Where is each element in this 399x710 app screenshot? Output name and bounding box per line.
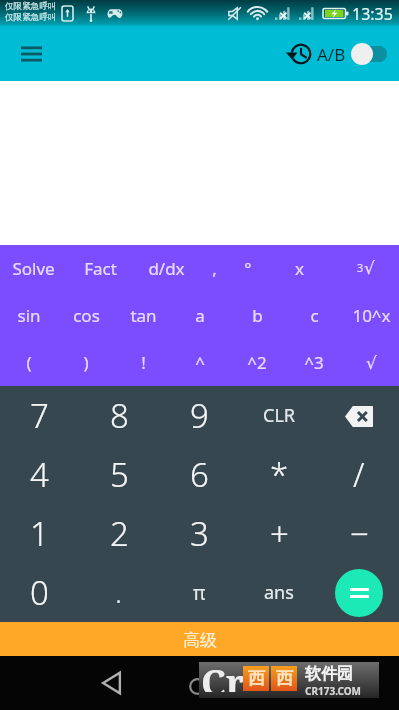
staticText: √ <box>364 258 375 278</box>
button[interactable]: 7 <box>0 386 79 445</box>
staticText: A/B <box>317 43 346 66</box>
button[interactable]: + <box>239 504 319 563</box>
button[interactable]: √ <box>344 339 398 386</box>
staticText: ^ <box>195 351 205 374</box>
button[interactable]: 10^x <box>344 292 398 339</box>
staticText: ) <box>83 351 89 374</box>
button[interactable]: 4 <box>0 445 79 504</box>
button[interactable]: a <box>173 292 227 339</box>
staticText: ° <box>244 257 252 280</box>
button[interactable]: CLR <box>239 386 319 445</box>
button[interactable]: 9 <box>159 386 239 445</box>
staticText: 9 <box>190 393 209 438</box>
button[interactable]: Equals <box>319 563 399 622</box>
button[interactable]: History <box>283 39 313 69</box>
staticText: / <box>353 452 365 497</box>
button[interactable]: ^2 <box>230 339 284 386</box>
staticText: tan <box>130 304 157 327</box>
button[interactable]: Backspace <box>319 386 399 445</box>
staticText: . <box>116 583 122 609</box>
button[interactable]: Solve <box>6 245 60 292</box>
button[interactable]: ° <box>221 245 275 292</box>
staticText: * <box>270 452 289 497</box>
staticText: ^2 <box>247 351 267 374</box>
staticText: ^3 <box>304 351 324 374</box>
button[interactable]: 高级 <box>0 622 399 656</box>
staticText: 6 <box>190 452 209 497</box>
staticText: , <box>212 257 217 280</box>
button[interactable]: Menu <box>10 33 52 75</box>
staticText: 3 <box>190 511 209 556</box>
button[interactable]: ans <box>239 563 319 622</box>
staticText: ! <box>141 351 146 374</box>
staticText: 8 <box>110 393 129 438</box>
button[interactable]: ^3 <box>287 339 341 386</box>
staticText: cos <box>73 304 100 327</box>
button[interactable]: b <box>230 292 284 339</box>
staticText: 西 <box>248 668 265 689</box>
staticText: CR173.COM <box>305 684 362 698</box>
button[interactable]: ) <box>59 339 113 386</box>
staticText: 1 <box>30 511 49 556</box>
button[interactable]: d/dx <box>139 245 193 292</box>
button[interactable]: ^ <box>173 339 227 386</box>
button[interactable]: 1 <box>0 504 79 563</box>
staticText: sin <box>17 304 41 327</box>
staticText: 3 <box>357 260 364 275</box>
staticText: 高级 <box>183 630 217 651</box>
staticText: b <box>252 304 263 327</box>
button[interactable]: c <box>287 292 341 339</box>
staticText: 仅限紧急呼叫 <box>5 12 57 23</box>
staticText: d/dx <box>148 257 185 280</box>
staticText: x <box>295 257 304 280</box>
button[interactable]: 3 <box>339 245 393 292</box>
button[interactable]: * <box>239 445 319 504</box>
button[interactable]: Backspace <box>339 396 379 436</box>
staticText: 4 <box>30 452 49 497</box>
staticText: π <box>193 580 206 606</box>
staticText: 0 <box>30 570 49 615</box>
button[interactable]: x <box>272 245 326 292</box>
staticText: 仅限紧急呼叫 <box>5 1 57 12</box>
button[interactable]: ( <box>2 339 56 386</box>
staticText: √ <box>366 353 377 373</box>
staticText: 13:35 <box>352 3 393 25</box>
staticText: ans <box>264 580 294 605</box>
button[interactable]: 5 <box>79 445 159 504</box>
button[interactable]: Fact <box>73 245 127 292</box>
button[interactable]: Back <box>91 663 131 703</box>
button[interactable]: . <box>79 563 159 622</box>
staticText: ( <box>26 351 32 374</box>
button[interactable]: 6 <box>159 445 239 504</box>
staticText: 2 <box>110 511 129 556</box>
staticText: 5 <box>110 452 129 497</box>
staticText: c <box>310 304 319 327</box>
staticText: 软件园 <box>305 664 353 684</box>
staticText: Fact <box>84 257 117 280</box>
staticText: a <box>195 304 205 327</box>
staticText: − <box>350 511 369 556</box>
button[interactable]: ! <box>116 339 170 386</box>
button[interactable]: cos <box>59 292 113 339</box>
button[interactable]: π <box>159 563 239 622</box>
staticText: Cr <box>201 656 246 692</box>
button[interactable]: 2 <box>79 504 159 563</box>
staticText: + <box>270 511 289 556</box>
button[interactable]: , <box>187 245 241 292</box>
staticText: Solve <box>12 257 55 280</box>
button[interactable]: / <box>319 445 399 504</box>
button[interactable]: 0 <box>0 563 79 622</box>
button[interactable]: 3 <box>159 504 239 563</box>
button[interactable]: tan <box>116 292 170 339</box>
button[interactable]: Toggle A/B mode <box>351 42 387 66</box>
button[interactable]: sin <box>2 292 56 339</box>
button[interactable]: Equals <box>335 569 383 617</box>
staticText: CLR <box>263 403 296 428</box>
staticText: 7 <box>30 393 49 438</box>
button[interactable]: 8 <box>79 386 159 445</box>
staticText: 10^x <box>352 304 391 327</box>
staticText: 西 <box>276 668 293 689</box>
button[interactable]: − <box>319 504 399 563</box>
